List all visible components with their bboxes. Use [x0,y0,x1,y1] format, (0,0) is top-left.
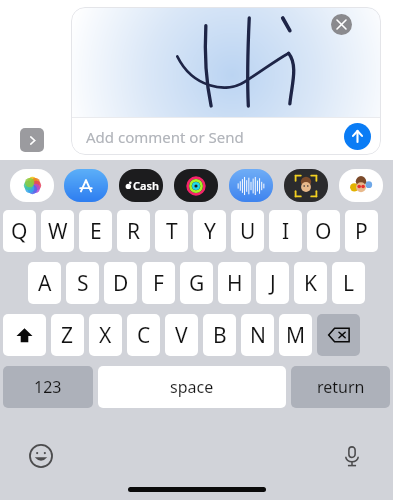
staticText: S [77,269,89,298]
button[interactable]: S [66,262,99,304]
staticText: L [343,269,355,298]
staticText: B [213,321,227,350]
button[interactable]: App Store [64,169,108,202]
button[interactable]: Photos [10,169,54,202]
staticText: V [175,321,188,350]
button[interactable]: E [79,210,112,252]
button[interactable]: P [345,210,378,252]
button[interactable]: Backspace [317,314,360,356]
button[interactable]: T [155,210,188,252]
staticText: space [170,376,214,398]
button[interactable]: H [218,262,251,304]
button[interactable]: W [41,210,74,252]
button[interactable]: K [294,262,327,304]
staticText: R [127,217,141,246]
staticText: T [166,217,178,246]
button[interactable]: space [98,366,286,408]
button[interactable]: Close [331,14,352,35]
staticText: M [286,321,306,350]
button[interactable]: Dictation [337,441,367,471]
button[interactable]: R [117,210,150,252]
button[interactable]: Add comment or Send [71,118,381,155]
staticText: return [317,376,365,398]
button[interactable]: Memoji stickers [339,169,383,202]
staticText: W [48,217,68,246]
button[interactable]: Shift [3,314,46,356]
staticText: D [113,269,129,298]
staticText: E [90,217,102,246]
staticText: H [227,269,243,298]
button[interactable]: 123 [3,366,93,408]
button[interactable]: M [279,314,312,356]
staticText: G [189,269,205,298]
button[interactable]: X [89,314,122,356]
button[interactable]: A [28,262,61,304]
staticText: Cash [133,178,159,193]
button[interactable]: F [142,262,175,304]
button[interactable]: B [203,314,236,356]
button[interactable]: Z [51,314,84,356]
staticText: P [355,217,368,246]
button[interactable]: N [241,314,274,356]
staticText: F [153,269,164,298]
staticText: Y [204,217,216,246]
staticText: C [137,321,151,350]
staticText: I [282,217,290,246]
staticText: N [250,321,266,350]
staticText: X [99,321,112,350]
staticText: O [315,217,332,246]
button[interactable]: L [332,262,365,304]
staticText: Q [11,217,28,246]
button[interactable]: Emoji [26,441,56,471]
button[interactable]: J [256,262,289,304]
button[interactable]: D [104,262,137,304]
button[interactable]: O [307,210,340,252]
button[interactable]: Memoji [284,169,328,202]
staticText: 123 [34,376,62,398]
button[interactable]: Send [344,123,371,150]
button[interactable]: return [291,366,390,408]
button[interactable]: Apple Cash [119,169,163,202]
staticText: Add comment or Send [86,127,244,147]
button[interactable]: G [180,262,213,304]
button[interactable]: Y [193,210,226,252]
button[interactable]: Voice memo [229,169,273,202]
staticText: A [38,269,52,298]
button[interactable]: I [269,210,302,252]
button[interactable]: Expand apps [20,128,44,152]
button[interactable]: Fitness [174,169,218,202]
staticText: K [304,269,317,298]
staticText: J [270,269,276,298]
button[interactable]: C [127,314,160,356]
staticText: U [240,217,256,246]
staticText: Z [61,321,74,350]
button[interactable]: Q [3,210,36,252]
button[interactable]: U [231,210,264,252]
button[interactable]: V [165,314,198,356]
